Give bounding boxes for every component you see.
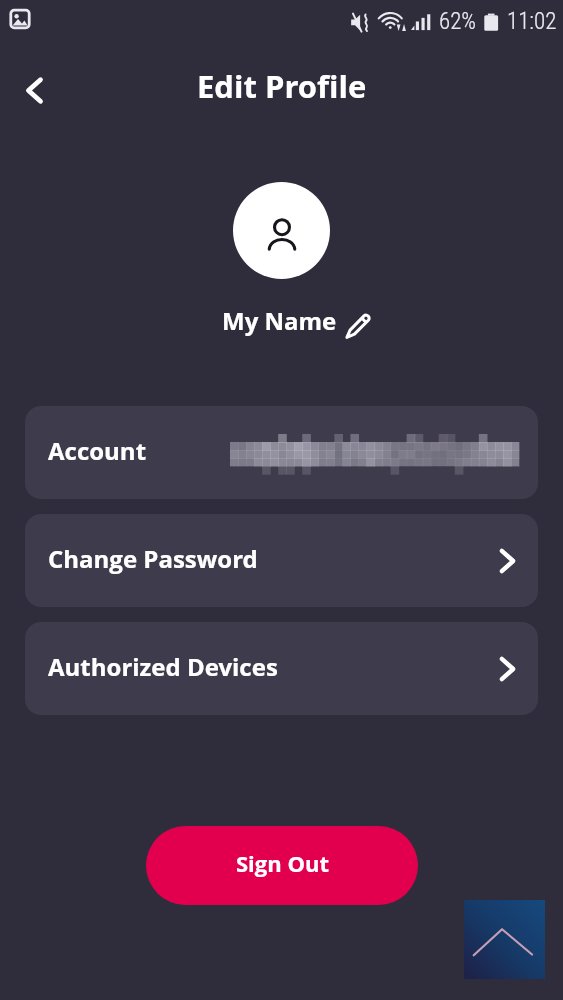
staticText: Change Password [48, 542, 258, 575]
staticText: Authorized Devices [48, 650, 278, 683]
staticText: Account [48, 434, 147, 467]
button[interactable]: Back [10, 66, 58, 114]
staticText: 11:02 [507, 8, 557, 35]
button[interactable]: Sign Out [146, 826, 418, 905]
staticText: Edit Profile [197, 65, 367, 107]
button[interactable]: Profile picture [233, 182, 330, 279]
button[interactable]: Edit name [342, 309, 374, 341]
staticText: 62% [439, 8, 477, 35]
button[interactable]: Authorized Devices [25, 622, 538, 715]
staticText: My Name [222, 304, 337, 337]
staticText: Sign Out [236, 848, 329, 878]
button[interactable]: Account [25, 406, 538, 499]
button[interactable]: Change Password [25, 514, 538, 607]
